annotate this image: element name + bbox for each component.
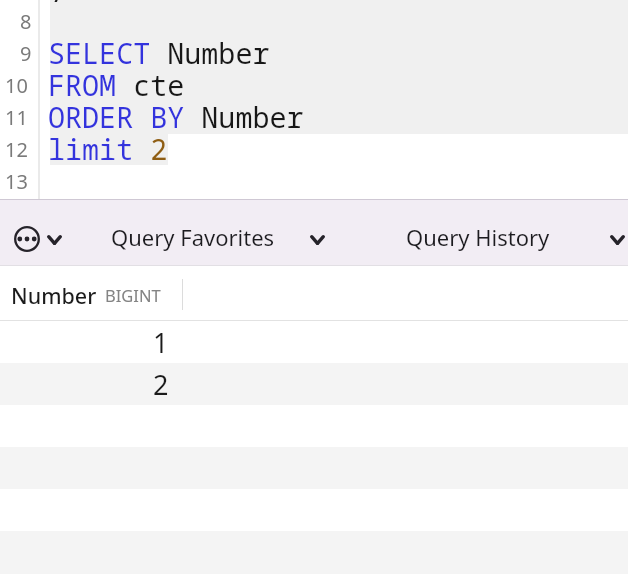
staticText: 8 [20,8,32,35]
button[interactable]: Number [6,274,161,316]
staticText: ORDER BY Number [48,98,304,130]
button[interactable]: Query History [398,218,628,256]
staticText: 12 [5,136,28,163]
staticText: 9 [20,40,32,67]
staticText: Query History [406,222,550,252]
button[interactable]: Query Favorites [103,218,333,256]
staticText: 13 [5,168,28,195]
staticText: 2 [153,366,169,403]
button[interactable]: 2 [0,363,628,405]
staticText: Query Favorites [111,222,275,252]
button[interactable]: 1 [0,321,628,363]
staticText: 10 [5,72,28,99]
button[interactable]: More options [10,222,66,256]
staticText: 1 [153,324,169,361]
staticText: limit 2 [48,130,168,162]
staticText: FROM cte [48,66,185,98]
staticText: Number [11,281,97,310]
staticText: ) [48,0,66,2]
staticText: SELECT Number [48,34,270,66]
staticText: 11 [5,104,28,131]
staticText: BIGINT [105,284,161,306]
